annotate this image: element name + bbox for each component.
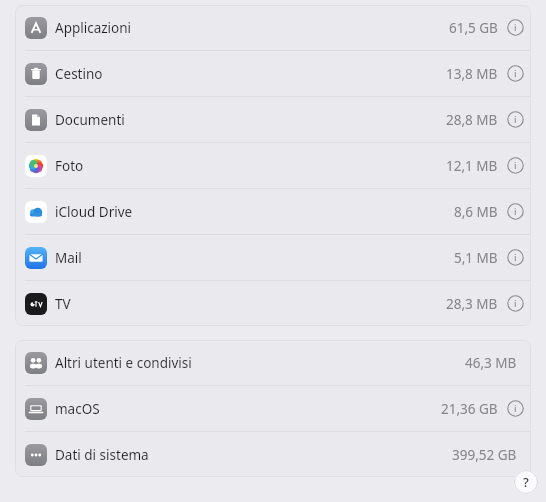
staticText: 12,1 MB bbox=[446, 157, 498, 175]
button[interactable]: Info Applicazioni bbox=[507, 19, 524, 36]
staticText: 28,3 MB bbox=[446, 295, 498, 313]
button[interactable]: macOS bbox=[15, 386, 531, 431]
staticText: TV bbox=[55, 295, 71, 313]
button[interactable]: Documenti bbox=[15, 97, 531, 142]
button[interactable]: Cestino bbox=[15, 51, 531, 96]
button[interactable]: Aiuto bbox=[514, 470, 538, 494]
staticText: i bbox=[514, 402, 517, 415]
staticText: Documenti bbox=[55, 111, 125, 129]
staticText: Applicazioni bbox=[55, 19, 132, 37]
staticText: i bbox=[514, 251, 517, 264]
staticText: 399,52 GB bbox=[452, 446, 517, 464]
staticText: i bbox=[514, 297, 517, 310]
staticText: i bbox=[514, 205, 517, 218]
staticText: 5,1 MB bbox=[454, 249, 498, 267]
staticText: 28,8 MB bbox=[446, 111, 498, 129]
staticText: ? bbox=[523, 473, 529, 491]
button[interactable]: Info Foto bbox=[507, 157, 524, 174]
staticText: 21,36 GB bbox=[441, 400, 498, 418]
button[interactable]: Foto bbox=[15, 143, 531, 188]
button[interactable]: Info Mail bbox=[507, 249, 524, 266]
button[interactable]: Altri utenti e condivisi bbox=[15, 340, 531, 385]
staticText: i bbox=[514, 113, 517, 126]
button[interactable]: Info TV bbox=[507, 295, 524, 312]
staticText: Dati di sistema bbox=[55, 446, 149, 464]
staticText: Foto bbox=[55, 157, 84, 175]
button[interactable]: Dati di sistema bbox=[15, 432, 531, 477]
staticText: 61,5 GB bbox=[449, 19, 498, 37]
staticText: i bbox=[514, 21, 517, 34]
staticText: i bbox=[514, 67, 517, 80]
staticText: 13,8 MB bbox=[446, 65, 498, 83]
button[interactable]: Mail bbox=[15, 235, 531, 280]
staticText: Altri utenti e condivisi bbox=[55, 354, 192, 372]
staticText: Cestino bbox=[55, 65, 103, 83]
staticText: macOS bbox=[55, 400, 100, 418]
staticText: 8,6 MB bbox=[454, 203, 498, 221]
staticText: 46,3 MB bbox=[465, 354, 517, 372]
staticText: iCloud Drive bbox=[55, 203, 133, 221]
staticText: i bbox=[514, 159, 517, 172]
button[interactable]: Info macOS bbox=[507, 400, 524, 417]
button[interactable]: Applicazioni bbox=[15, 5, 531, 50]
button[interactable]: Info iCloud Drive bbox=[507, 203, 524, 220]
button[interactable]: Info Documenti bbox=[507, 111, 524, 128]
staticText: Mail bbox=[55, 249, 82, 267]
button[interactable]: Info Cestino bbox=[507, 65, 524, 82]
button[interactable]: TV bbox=[15, 281, 531, 326]
button[interactable]: iCloud Drive bbox=[15, 189, 531, 234]
